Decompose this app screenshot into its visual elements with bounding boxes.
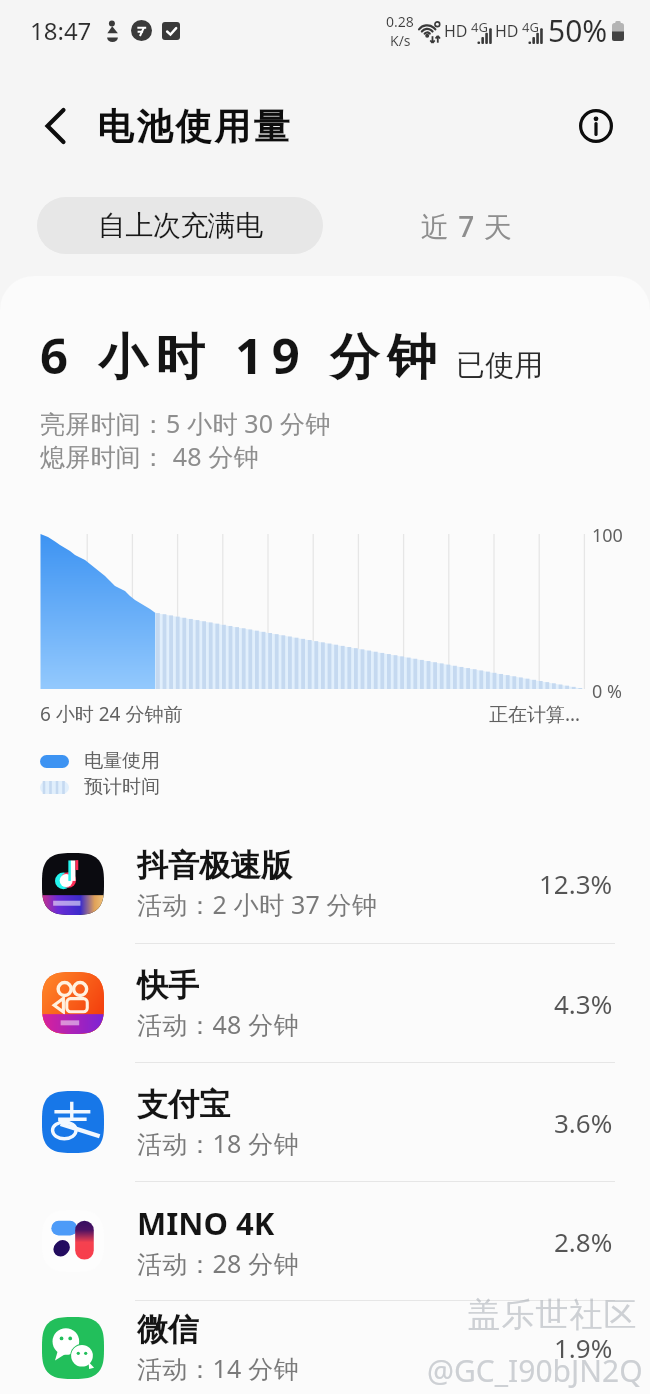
staticText: 4G bbox=[522, 18, 539, 36]
staticText: 电池使用量 bbox=[96, 104, 291, 149]
staticText: 快手 bbox=[137, 966, 199, 1005]
staticText: 0 % bbox=[592, 679, 622, 704]
button[interactable]: 支付宝 bbox=[0, 1063, 650, 1181]
button[interactable]: 近 7 天 bbox=[352, 197, 582, 254]
staticText: 活动：14 分钟 bbox=[137, 1351, 299, 1385]
staticText: 已使用 bbox=[456, 347, 543, 384]
staticText: 50% bbox=[548, 10, 608, 51]
staticText: K/s bbox=[390, 31, 411, 50]
staticText: 6 小时 24 分钟前 bbox=[40, 701, 183, 727]
staticText: 活动：18 分钟 bbox=[137, 1126, 299, 1160]
button[interactable]: Back bbox=[0, 81, 96, 171]
staticText: @GC_I90bJN2Q bbox=[427, 1350, 643, 1391]
staticText: 活动：28 分钟 bbox=[137, 1246, 299, 1280]
staticText: MINO 4K bbox=[137, 1202, 275, 1244]
staticText: 12.3% bbox=[539, 866, 613, 901]
button[interactable]: 自上次充满电 bbox=[37, 197, 323, 254]
button[interactable]: MINO 4K bbox=[0, 1182, 650, 1300]
staticText: 熄屏时间： 48 分钟 bbox=[40, 439, 259, 473]
staticText: 活动：2 小时 37 分钟 bbox=[137, 887, 378, 921]
staticText: 4G bbox=[471, 18, 488, 36]
staticText: 100 bbox=[592, 523, 623, 548]
staticText: HD bbox=[495, 20, 519, 42]
staticText: 预计时间 bbox=[84, 775, 160, 799]
staticText: 自上次充满电 bbox=[98, 208, 263, 243]
button[interactable]: Info bbox=[574, 104, 618, 148]
staticText: 亮屏时间：5 小时 30 分钟 bbox=[40, 406, 331, 440]
staticText: 支付宝 bbox=[137, 1085, 230, 1124]
staticText: 活动：48 分钟 bbox=[137, 1007, 299, 1041]
staticText: HD bbox=[444, 20, 468, 42]
button[interactable]: 快手 bbox=[0, 944, 650, 1062]
staticText: 1.9% bbox=[554, 1330, 613, 1365]
button[interactable]: 微信 bbox=[0, 1301, 650, 1394]
staticText: 微信 bbox=[137, 1310, 199, 1349]
staticText: 电量使用 bbox=[84, 749, 160, 773]
staticText: 正在计算… bbox=[489, 701, 581, 727]
staticText: 抖音极速版 bbox=[137, 846, 292, 885]
staticText: 2.8% bbox=[554, 1224, 613, 1259]
staticText: 0.28 bbox=[386, 12, 414, 31]
staticText: 盖乐世社区 bbox=[467, 1294, 637, 1336]
staticText: 4.3% bbox=[554, 986, 613, 1021]
staticText: 3.6% bbox=[554, 1105, 613, 1140]
button[interactable]: 抖音极速版 bbox=[0, 824, 650, 943]
staticText: 近 7 天 bbox=[421, 207, 513, 245]
staticText: 6 小时 19 分钟 bbox=[40, 322, 446, 389]
staticText: 18:47 bbox=[30, 14, 92, 47]
